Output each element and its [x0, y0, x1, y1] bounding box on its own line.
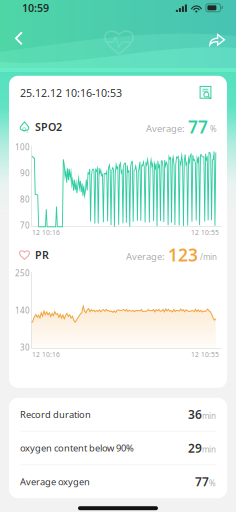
staticText: oxygen content below 90%	[20, 442, 134, 454]
staticText: 12 10:55	[191, 228, 219, 237]
staticText: 77	[188, 115, 208, 138]
staticText: 30	[20, 342, 30, 353]
staticText: Average:	[126, 250, 165, 262]
staticText: 90	[20, 168, 30, 178]
button[interactable]: Share	[203, 24, 231, 52]
staticText: Record duration	[20, 408, 91, 420]
button[interactable]: Record duration	[9, 398, 227, 431]
staticText: 12 10:55	[191, 350, 219, 359]
staticText: Average:	[146, 122, 185, 134]
staticText: %	[209, 478, 216, 488]
staticText: %	[210, 123, 217, 134]
staticText: 250	[15, 268, 30, 278]
staticText: SPO2	[35, 120, 62, 134]
staticText: min	[202, 410, 216, 421]
button[interactable]: Report	[196, 83, 216, 103]
staticText: min	[202, 444, 216, 455]
staticText: /min	[200, 251, 217, 262]
staticText: 123	[168, 243, 198, 266]
staticText: 140	[15, 305, 30, 316]
staticText: 70	[20, 220, 30, 231]
button[interactable]: Average oxygen	[9, 465, 227, 498]
staticText: PR	[35, 248, 49, 262]
staticText: 77	[195, 474, 209, 490]
staticText: 10:59	[22, 1, 49, 15]
staticText: Average oxygen	[20, 475, 90, 488]
staticText: 80	[20, 194, 30, 205]
staticText: O₂	[22, 126, 28, 133]
staticText: 25.12.12 10:16-10:53	[20, 86, 122, 100]
staticText: 12 10:16	[32, 228, 60, 237]
staticText: 36	[188, 406, 202, 422]
staticText: 100	[15, 142, 30, 152]
button[interactable]: Back	[5, 24, 33, 52]
staticText: 29	[188, 440, 202, 456]
button[interactable]: oxygen content below 90%	[9, 431, 227, 464]
staticText: 12 10:16	[32, 350, 60, 359]
